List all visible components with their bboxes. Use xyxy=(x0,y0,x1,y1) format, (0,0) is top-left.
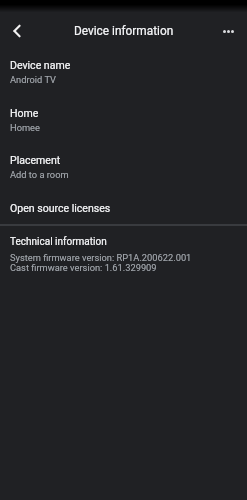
button[interactable]: Back xyxy=(3,17,31,45)
button[interactable]: Home xyxy=(0,99,247,145)
button[interactable]: Open source licenses xyxy=(0,194,247,223)
staticText: Open source licenses xyxy=(10,202,111,214)
staticText: Device information xyxy=(74,24,174,38)
staticText: Home xyxy=(10,107,39,119)
button[interactable]: More options xyxy=(214,17,242,45)
staticText: System firmware version: RP1A.200622.001… xyxy=(10,252,192,273)
staticText: Device name xyxy=(10,59,71,71)
staticText: Technical information xyxy=(10,236,107,248)
staticText: Placement xyxy=(10,154,61,166)
staticText: Homee xyxy=(10,122,40,133)
staticText: Android TV xyxy=(10,74,56,85)
button[interactable]: Device name xyxy=(0,50,247,99)
button[interactable]: Placement xyxy=(0,145,247,194)
staticText: Add to a room xyxy=(10,169,69,180)
